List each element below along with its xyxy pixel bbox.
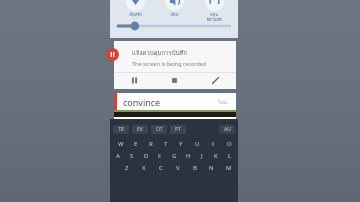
staticText: Z <box>125 164 129 172</box>
button[interactable]: R <box>143 138 158 150</box>
button[interactable]: Quick setting <box>197 0 231 30</box>
staticText: W <box>118 140 124 148</box>
staticText: Y <box>179 140 183 148</box>
staticText: PT <box>175 126 181 133</box>
button[interactable]: M <box>220 162 237 174</box>
button[interactable]: PT <box>170 125 186 134</box>
staticText: convince <box>123 96 161 108</box>
button[interactable]: A <box>110 150 125 162</box>
staticText: K <box>214 152 218 160</box>
staticText: X <box>142 164 146 172</box>
staticText: F <box>158 152 162 160</box>
button[interactable]: E <box>128 138 143 150</box>
staticText: แจ้งควบคุมการบันทึก <box>132 48 188 58</box>
staticText: U <box>195 140 200 148</box>
button[interactable]: Pause <box>114 73 154 87</box>
staticText: D <box>144 152 149 160</box>
staticText: R <box>149 140 153 148</box>
staticText: ไม่ม.. <box>218 98 230 106</box>
button[interactable]: K <box>209 150 223 162</box>
staticText: G <box>172 152 177 160</box>
button[interactable]: C <box>152 162 169 174</box>
staticText: J <box>201 152 203 160</box>
staticText: T <box>164 140 168 148</box>
staticText: หมุน อัตโนมัติ <box>206 11 222 22</box>
button[interactable]: แจ้งควบคุมการบันทึก <box>114 41 236 89</box>
button[interactable]: Brightness <box>118 21 230 31</box>
button[interactable]: L <box>223 150 237 162</box>
staticText: EV <box>137 126 143 133</box>
staticText: N <box>209 164 214 172</box>
staticText: S <box>130 152 134 160</box>
button[interactable]: W <box>113 138 128 150</box>
button[interactable]: T <box>158 138 173 150</box>
button[interactable]: convince <box>114 93 236 110</box>
staticText: E <box>134 140 138 148</box>
button[interactable]: D <box>139 150 153 162</box>
staticText: B <box>193 164 197 172</box>
button[interactable]: Y <box>173 138 189 150</box>
button[interactable]: U <box>189 138 205 150</box>
button[interactable]: X <box>135 162 152 174</box>
staticText: เสียง <box>170 11 179 17</box>
staticText: A <box>116 152 120 160</box>
button[interactable]: AU <box>219 125 235 134</box>
button[interactable]: Quick setting <box>118 0 152 25</box>
button[interactable]: O <box>221 138 237 150</box>
staticText: AU <box>224 126 231 133</box>
button[interactable]: Quick setting <box>157 0 191 25</box>
button[interactable]: F <box>153 150 167 162</box>
button[interactable]: EV <box>132 125 148 134</box>
staticText: O <box>227 140 232 148</box>
button[interactable]: Z <box>119 162 135 174</box>
staticText: I <box>212 140 215 148</box>
staticText: H <box>186 152 191 160</box>
button[interactable]: G <box>167 150 181 162</box>
staticText: L <box>228 152 232 160</box>
button[interactable]: Stop <box>154 73 195 87</box>
button[interactable]: H <box>181 150 195 162</box>
button[interactable]: OT <box>151 125 167 134</box>
staticText: The screen is being recorded <box>132 60 207 67</box>
button[interactable]: V <box>169 162 186 174</box>
button[interactable]: S <box>125 150 139 162</box>
staticText: สั่นหรือ <box>129 11 142 17</box>
staticText: OT <box>156 126 163 133</box>
button[interactable]: J <box>195 150 209 162</box>
button[interactable]: I <box>205 138 221 150</box>
button[interactable]: TR <box>113 125 129 134</box>
staticText: V <box>176 164 180 172</box>
staticText: M <box>226 164 232 172</box>
button[interactable]: N <box>203 162 220 174</box>
button[interactable]: B <box>186 162 203 174</box>
button[interactable]: Edit <box>195 73 236 87</box>
staticText: C <box>159 164 163 172</box>
staticText: TR <box>118 126 124 133</box>
